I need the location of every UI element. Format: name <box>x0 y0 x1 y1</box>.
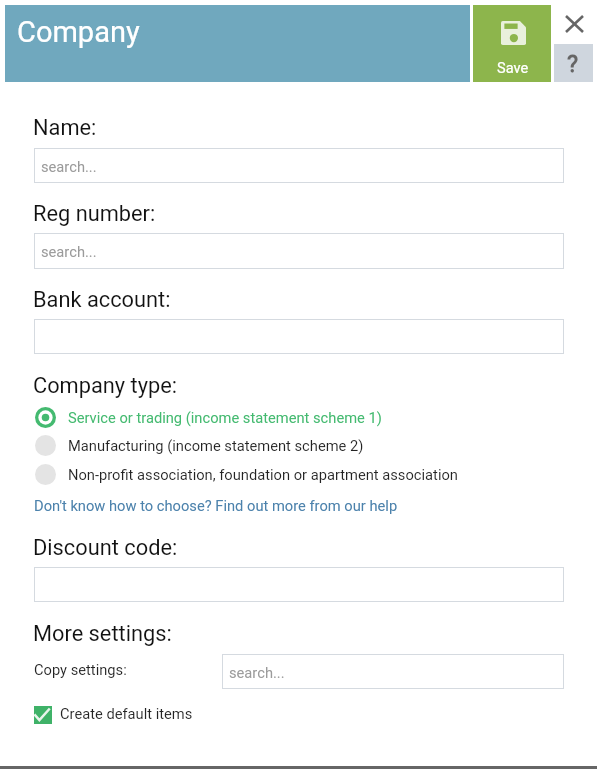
button[interactable]: Non-profit association, foundation or ap… <box>35 463 458 486</box>
staticText: search... <box>229 664 285 681</box>
staticText: Name: <box>33 115 97 141</box>
staticText: search... <box>41 158 97 175</box>
staticText: Non-profit association, foundation or ap… <box>68 466 458 483</box>
staticText: Manufacturing (income statement scheme 2… <box>68 437 364 454</box>
button[interactable]: Save <box>473 5 551 82</box>
button[interactable] <box>34 567 564 602</box>
button[interactable]: Company <box>5 5 470 82</box>
staticText: Service or trading (income statement sch… <box>68 409 382 426</box>
button[interactable] <box>34 319 564 354</box>
button[interactable]: Close <box>558 8 590 40</box>
staticText: Bank account: <box>33 287 171 313</box>
staticText: Company <box>17 15 140 49</box>
button[interactable]: search... <box>34 233 564 269</box>
button[interactable]: Create default items <box>34 705 193 724</box>
button[interactable]: Help <box>554 44 593 82</box>
staticText: Create default items <box>60 705 193 722</box>
staticText: Company type: <box>33 373 178 399</box>
button[interactable]: search... <box>34 148 564 183</box>
staticText: search... <box>41 243 97 260</box>
button[interactable]: Don't know how to choose? Find out more … <box>34 497 398 514</box>
staticText: Reg number: <box>33 201 156 227</box>
staticText: Copy settings: <box>34 661 127 678</box>
button[interactable]: Service or trading (income statement sch… <box>35 406 382 429</box>
button[interactable]: search... <box>222 654 564 689</box>
staticText: More settings: <box>33 621 172 647</box>
button[interactable]: Manufacturing (income statement scheme 2… <box>35 434 364 457</box>
staticText: Discount code: <box>33 535 178 561</box>
staticText: Save <box>497 59 529 76</box>
staticText: ? <box>567 50 579 78</box>
